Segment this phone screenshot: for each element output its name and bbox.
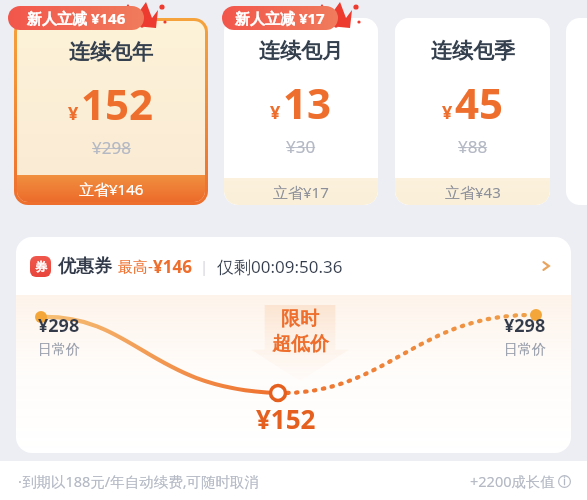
button[interactable]: 连续包年	[14, 18, 208, 205]
staticText: ·到期以188元/年自动续费,可随时取消	[18, 471, 260, 491]
staticText: 限时	[281, 307, 319, 331]
button[interactable]: +2200成长值	[470, 471, 571, 491]
staticText: 超低价	[272, 332, 329, 356]
staticText: 45	[455, 74, 504, 131]
staticText: 仅剩00:09:50.36	[217, 255, 343, 278]
staticText: ¥146	[153, 255, 192, 278]
staticText: 立省¥43	[445, 182, 501, 202]
staticText: ¥	[68, 101, 79, 126]
staticText: +2200成长值	[470, 471, 555, 491]
button[interactable]: 券	[16, 237, 571, 295]
staticText: 新人立减 ¥17	[235, 8, 325, 28]
staticText: ¥298	[38, 313, 80, 338]
staticText: 立省¥17	[273, 182, 329, 202]
button[interactable]: 连续包季	[395, 18, 550, 205]
button[interactable]: 查看优惠券	[531, 251, 561, 281]
staticText: 连续包季	[431, 38, 515, 64]
staticText: 立省¥146	[79, 179, 144, 199]
staticText: 优惠券	[58, 255, 112, 278]
other: 成长值说明	[558, 475, 571, 488]
staticText: 日常价	[38, 341, 80, 359]
staticText: ¥	[270, 100, 281, 125]
staticText: 新人立减 ¥146	[27, 8, 126, 28]
staticText: ¥88	[458, 135, 488, 158]
staticText: 最高-	[118, 256, 153, 276]
staticText: |	[200, 256, 209, 276]
staticText: ¥30	[286, 135, 316, 158]
button[interactable]: 连续包月	[224, 18, 378, 205]
staticText: 152	[81, 75, 154, 132]
staticText: ¥298	[92, 136, 131, 159]
staticText: ¥	[442, 100, 453, 125]
staticText: 券	[35, 259, 47, 274]
staticText: 连续包月	[259, 38, 343, 64]
staticText: 13	[283, 74, 332, 131]
staticText: ¥298	[504, 313, 546, 338]
staticText: 日常价	[504, 341, 546, 359]
staticText: ¥152	[256, 401, 316, 436]
staticText: 连续包年	[69, 39, 153, 65]
